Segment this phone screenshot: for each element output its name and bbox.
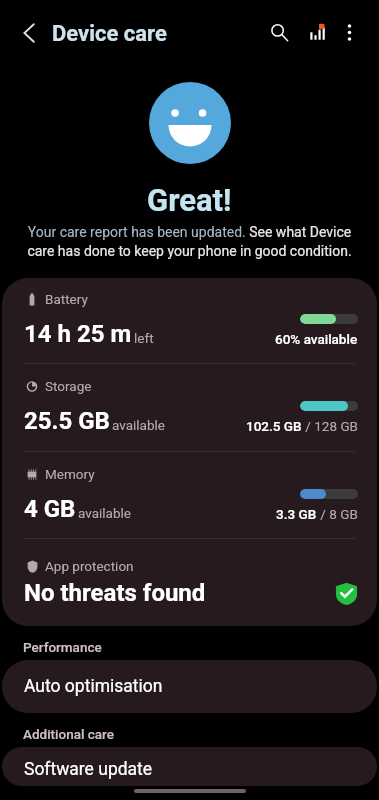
staticText: Device care xyxy=(52,21,167,47)
staticText: available xyxy=(78,505,131,521)
staticText: Battery xyxy=(45,291,88,307)
button[interactable]: Usage statistics xyxy=(297,13,336,52)
staticText: / 128 GB xyxy=(302,418,358,434)
staticText: Great! xyxy=(147,182,232,218)
staticText: Auto optimisation xyxy=(24,676,163,697)
staticText: No threats found xyxy=(24,579,206,607)
staticText: 3.3 GB xyxy=(276,506,317,522)
button[interactable]: Memory xyxy=(2,452,377,538)
staticText: Software update xyxy=(24,759,153,780)
staticText: 14 h 25 m xyxy=(24,320,132,348)
staticText: 4 GB xyxy=(24,495,76,523)
staticText: Memory xyxy=(45,466,95,482)
button[interactable]: Navigate up xyxy=(9,13,48,52)
staticText: 60% available xyxy=(275,331,358,347)
staticText: 102.5 GB xyxy=(246,418,302,434)
staticText: Storage xyxy=(45,378,92,394)
staticText: 25.5 GB xyxy=(24,407,110,435)
button[interactable]: More options xyxy=(330,13,369,52)
button[interactable]: Search xyxy=(260,13,299,52)
button[interactable]: Auto optimisation xyxy=(2,660,377,713)
button[interactable]: Storage xyxy=(2,364,377,451)
staticText: Your care report has been updated. See w… xyxy=(13,224,366,259)
staticText: left xyxy=(134,330,154,346)
staticText: App protection xyxy=(45,558,134,574)
button[interactable]: Battery xyxy=(2,278,377,363)
staticText: / 8 GB xyxy=(317,506,358,522)
staticText: Additional care xyxy=(23,726,114,742)
button[interactable]: Software update xyxy=(2,747,377,786)
staticText: Performance xyxy=(23,639,102,655)
button[interactable]: App protection xyxy=(2,539,377,626)
staticText: available xyxy=(112,417,165,433)
